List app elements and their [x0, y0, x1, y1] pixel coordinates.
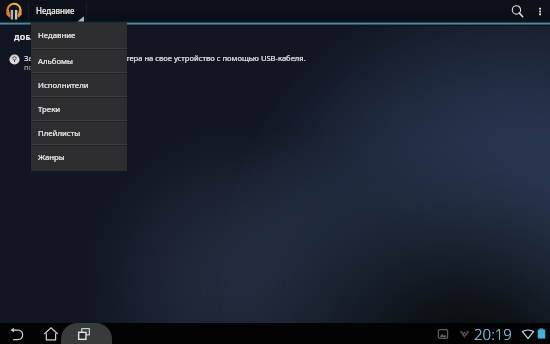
staticText: ДОБАВИТЬ МУЗЫКУ: [14, 33, 91, 43]
button[interactable]: Жанры: [31, 146, 127, 168]
button[interactable]: More options: [530, 0, 549, 22]
staticText: подробнее: [24, 62, 65, 72]
staticText: Недавние: [38, 30, 76, 41]
staticText: Треки: [38, 104, 61, 115]
button[interactable]: Плейлисты: [31, 122, 127, 144]
button[interactable]: Треки: [31, 98, 127, 120]
staticText: Альбомы: [38, 56, 73, 67]
staticText: Недавние: [36, 5, 75, 16]
button[interactable]: Недавние: [29, 0, 86, 21]
staticText: Плейлисты: [38, 128, 81, 139]
button[interactable]: Back: [6, 323, 28, 344]
button[interactable]: Исполнители: [31, 74, 127, 96]
staticText: Исполнители: [38, 80, 89, 91]
button[interactable]: Недавние: [31, 23, 127, 48]
button[interactable]: Screenshot: [433, 323, 453, 344]
staticText: 20:19: [474, 324, 512, 344]
button[interactable]: Recent apps: [58, 323, 109, 344]
button[interactable]: Search: [506, 0, 529, 22]
staticText: Жанры: [38, 152, 65, 163]
button[interactable]: Google Play Music: [5, 2, 23, 20]
button[interactable]: Home: [40, 323, 62, 344]
staticText: Загрузите музыку с компьютера на свое ус…: [24, 53, 306, 63]
button[interactable]: Альбомы: [31, 50, 127, 72]
